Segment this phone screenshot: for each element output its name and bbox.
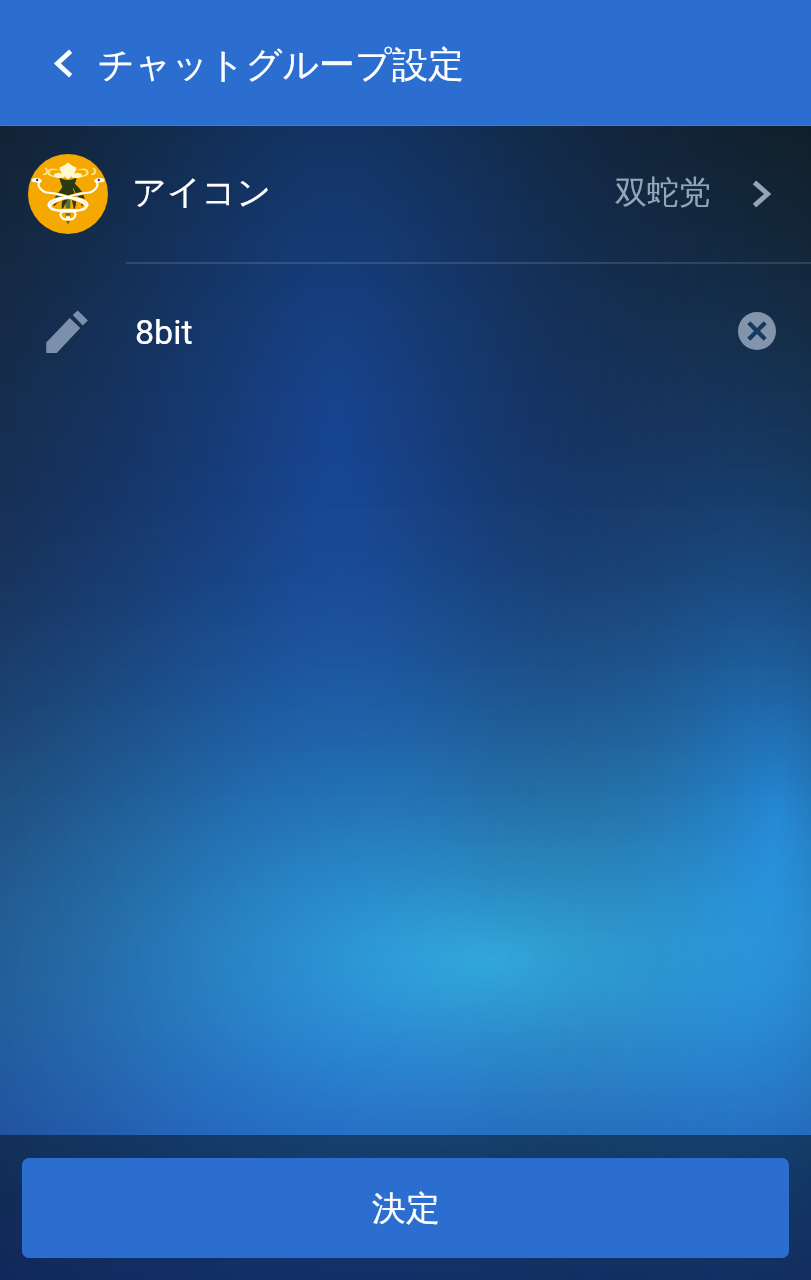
staticText: アイコン <box>132 171 272 214</box>
button[interactable]: 決定 <box>22 1158 789 1258</box>
button[interactable]: Back <box>0 0 100 125</box>
staticText: 決定 <box>372 1187 440 1230</box>
staticText: 8bit <box>135 312 193 352</box>
staticText: 双蛇党 <box>615 172 711 212</box>
button[interactable]: Clear text <box>720 297 794 371</box>
staticText: チャットグループ設定 <box>98 42 464 87</box>
button[interactable]: アイコン <box>0 126 811 262</box>
